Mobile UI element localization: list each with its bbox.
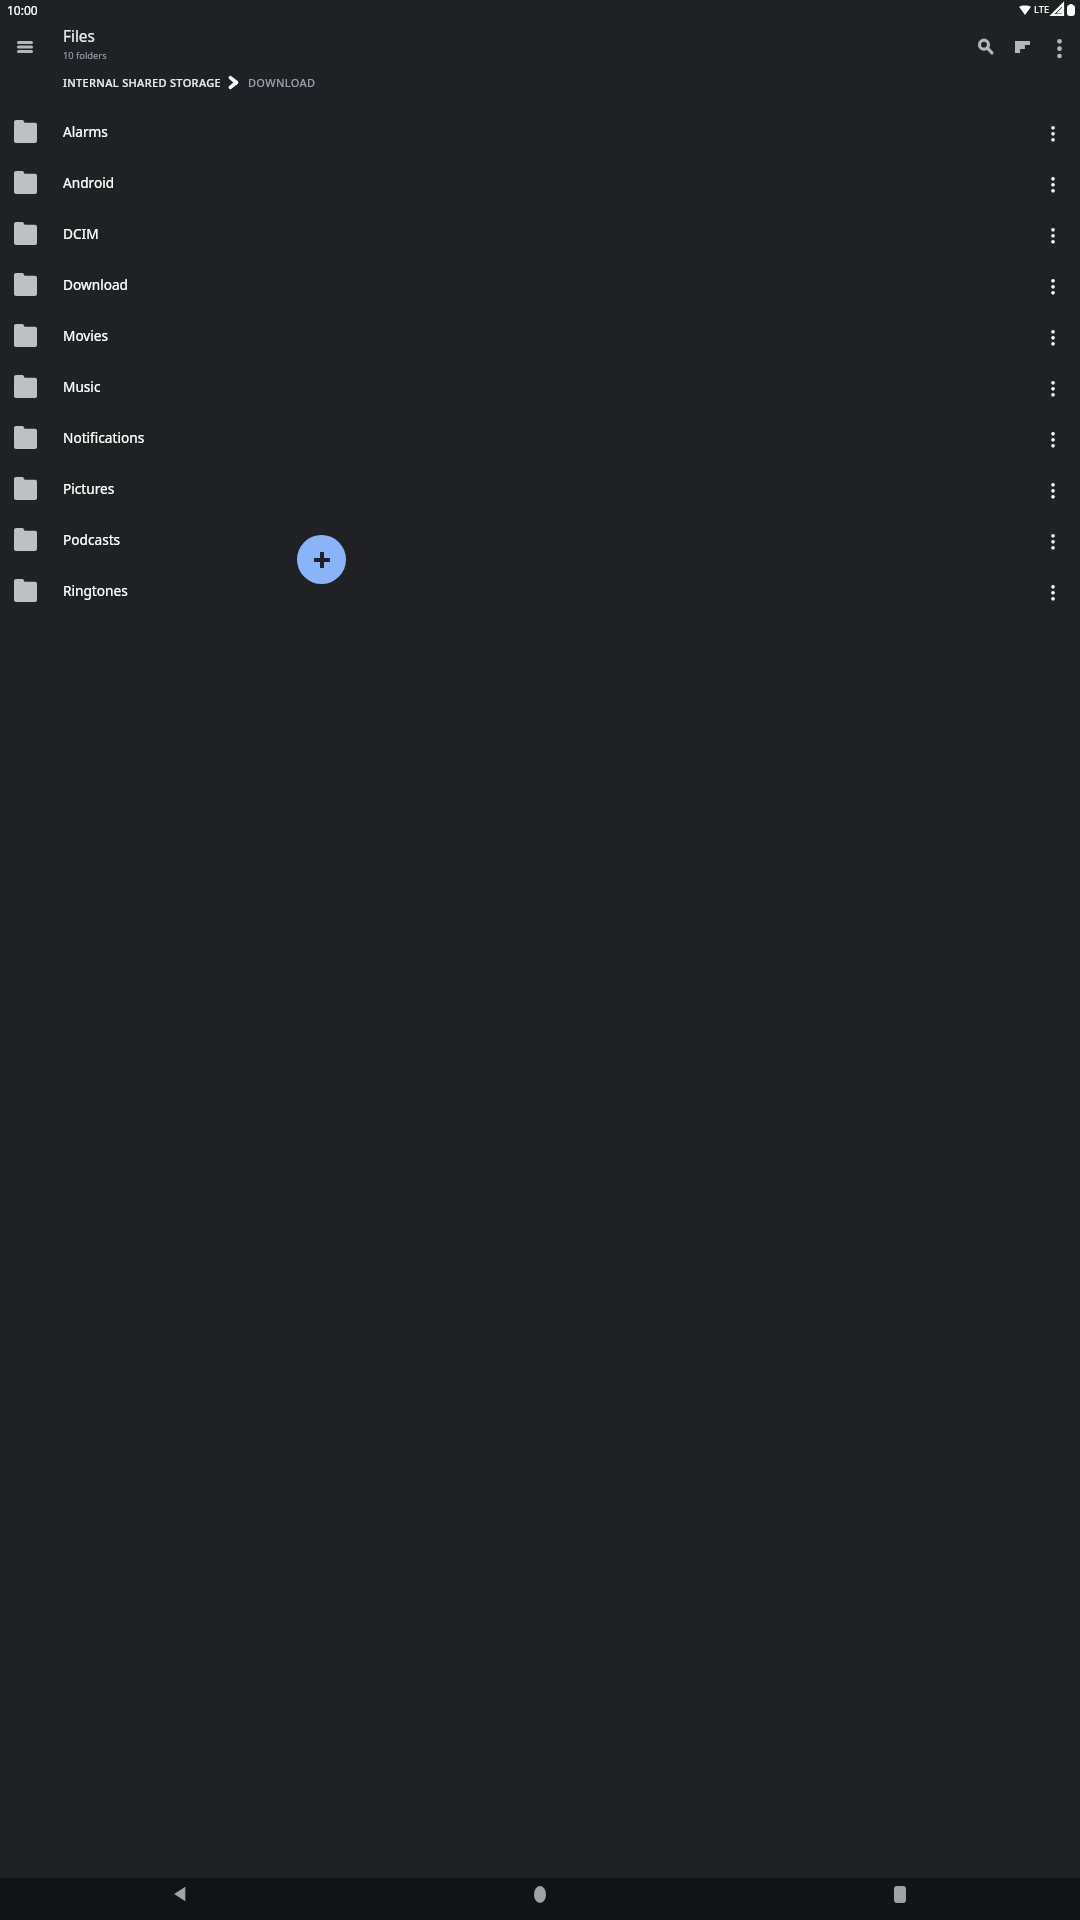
staticText: 10 folders	[63, 49, 107, 62]
staticText: Pictures	[63, 479, 1034, 498]
staticText: Download	[63, 275, 1034, 294]
button[interactable]: Download	[0, 259, 1080, 310]
button[interactable]: Ringtones	[0, 565, 1080, 616]
button[interactable]: Podcasts	[0, 514, 1080, 565]
staticText: Ringtones	[63, 581, 1034, 600]
button[interactable]: More options for DCIM	[1034, 212, 1071, 255]
button[interactable]: Search	[967, 28, 1004, 65]
button[interactable]: Pictures	[0, 463, 1080, 514]
staticText: Podcasts	[63, 530, 1034, 549]
staticText: Notifications	[63, 428, 1034, 447]
button[interactable]: Android	[0, 157, 1080, 208]
staticText: LTE	[1034, 3, 1050, 16]
staticText: Movies	[63, 326, 1034, 345]
button[interactable]: Music	[0, 361, 1080, 412]
staticText: 10:00	[7, 2, 38, 18]
button[interactable]: Notifications	[0, 412, 1080, 463]
button[interactable]: Home	[360, 1873, 720, 1915]
button[interactable]: More options for Alarms	[1034, 110, 1071, 153]
button[interactable]: More options for Movies	[1034, 314, 1071, 357]
button[interactable]: More options for Pictures	[1034, 467, 1071, 510]
staticText: DOWNLOAD	[248, 75, 316, 90]
staticText: INTERNAL SHARED STORAGE	[63, 75, 221, 90]
staticText: Alarms	[63, 122, 1034, 141]
button[interactable]: Recent apps	[720, 1873, 1080, 1915]
button[interactable]: More options for Music	[1034, 365, 1071, 408]
button[interactable]: INTERNAL SHARED STORAGE	[63, 70, 221, 95]
button[interactable]: Back	[0, 1873, 360, 1915]
button[interactable]: DCIM	[0, 208, 1080, 259]
button[interactable]: More options for Podcasts	[1034, 518, 1071, 561]
button[interactable]: Open navigation drawer	[6, 28, 43, 65]
button[interactable]: Alarms	[0, 106, 1080, 157]
button[interactable]: Create new folder	[297, 535, 346, 584]
staticText: Music	[63, 377, 1034, 396]
staticText: Android	[63, 173, 1034, 192]
button[interactable]: More options for Ringtones	[1034, 569, 1071, 612]
button[interactable]: More options	[1041, 28, 1078, 65]
staticText: Files	[63, 26, 95, 47]
button[interactable]: DOWNLOAD	[248, 70, 316, 95]
button[interactable]: More options for Android	[1034, 161, 1071, 204]
button[interactable]: More options for Notifications	[1034, 416, 1071, 459]
button[interactable]: Sort	[1004, 28, 1041, 65]
button[interactable]: More options for Download	[1034, 263, 1071, 306]
button[interactable]: Movies	[0, 310, 1080, 361]
staticText: DCIM	[63, 224, 1034, 243]
